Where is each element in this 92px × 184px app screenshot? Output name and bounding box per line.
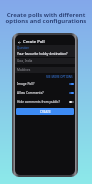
staticText: Your favourite hobby destination?: [17, 52, 68, 56]
staticText: Goa, India: [17, 59, 33, 63]
staticText: Create Poll: [23, 39, 45, 45]
staticText: Allow Comments?: [17, 91, 69, 95]
staticText: Question: [17, 46, 29, 50]
staticText: Maldives: [17, 68, 31, 72]
staticText: SEE MORE OPTIONS: [46, 75, 73, 79]
button[interactable]: Goa, India: [15, 58, 75, 64]
button[interactable]: Question: [15, 45, 75, 57]
button[interactable]: Maldives: [15, 67, 75, 73]
staticText: Create polls with different options and …: [0, 11, 92, 25]
button[interactable]: Hide comments from public?: [15, 97, 75, 106]
button[interactable]: Back: [16, 39, 22, 45]
button[interactable]: Image Poll?: [15, 79, 75, 88]
button[interactable]: Allow Comments?: [15, 88, 75, 97]
button[interactable]: SEE MORE OPTIONS: [45, 75, 74, 79]
staticText: Image Poll?: [17, 82, 69, 86]
button[interactable]: CREATE: [16, 108, 74, 115]
staticText: CREATE: [40, 110, 51, 114]
staticText: Hide comments from public?: [17, 100, 69, 104]
